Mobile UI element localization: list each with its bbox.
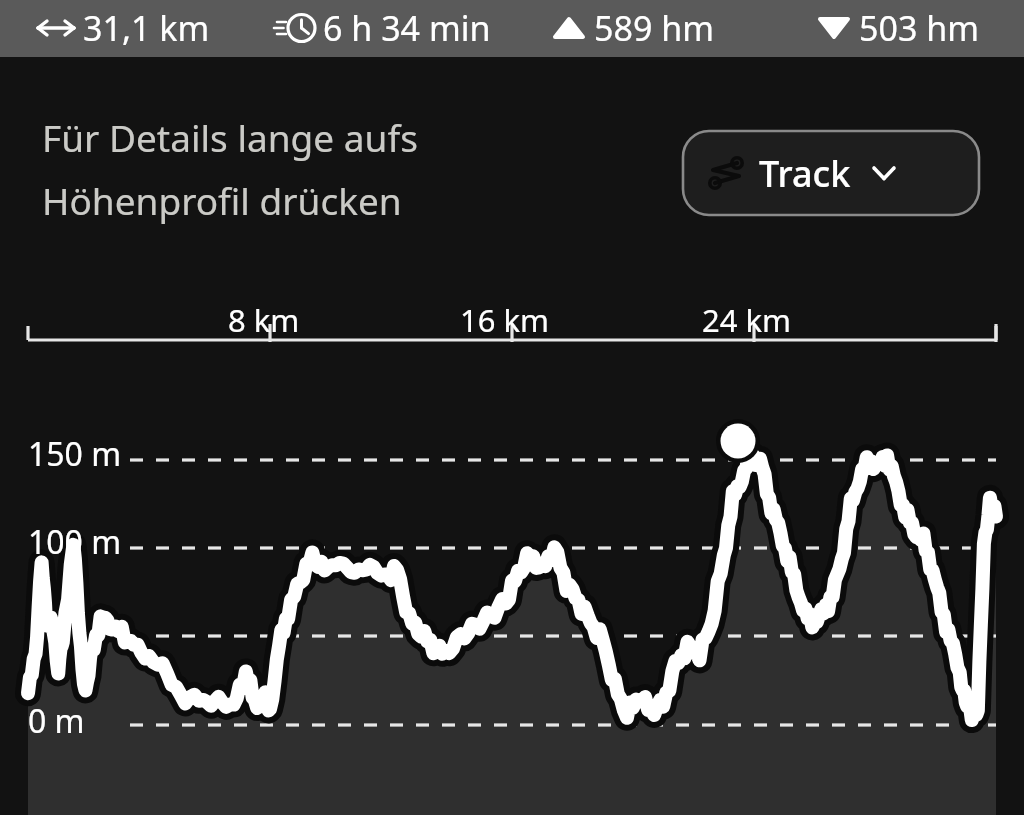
staticText: 589 hm [594, 5, 714, 51]
staticText: 0 m [28, 699, 85, 743]
staticText: Track [759, 149, 851, 198]
staticText: 503 hm [859, 5, 979, 51]
staticText: 31,1 km [83, 5, 210, 51]
staticText: 100 m [28, 520, 122, 564]
staticText: Für Details lange aufs [42, 112, 418, 162]
staticText: 150 m [28, 432, 122, 476]
staticText: Höhenprofil drücken [42, 175, 402, 225]
button[interactable]: Höhenprofil [0, 0, 1024, 815]
staticText: 6 h 34 min [323, 5, 491, 51]
staticText: 24 km [702, 299, 792, 341]
staticText: 16 km [460, 299, 550, 341]
staticText: 8 km [228, 299, 300, 341]
button[interactable]: Track [683, 131, 979, 215]
